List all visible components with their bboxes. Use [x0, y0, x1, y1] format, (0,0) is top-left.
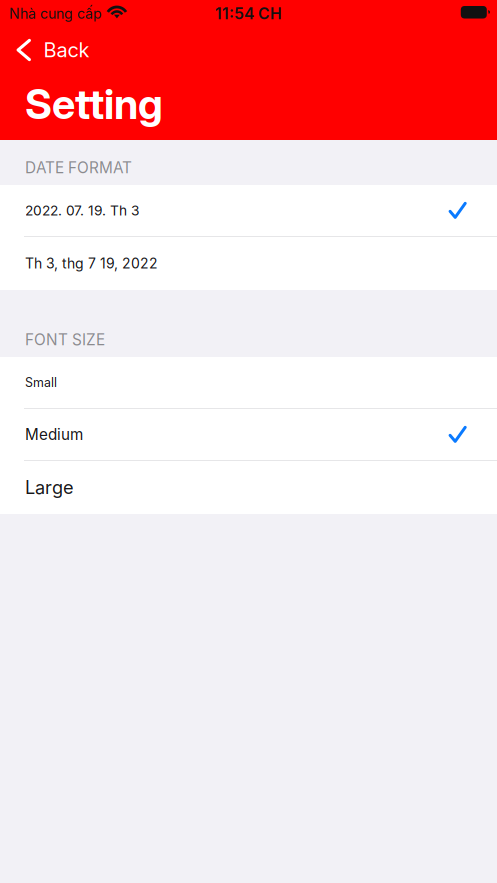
staticText: Medium [25, 425, 83, 444]
button[interactable]: 2022. 07. 19. Th 3 [0, 185, 497, 237]
staticText: 2022. 07. 19. Th 3 [25, 202, 139, 219]
button[interactable]: Medium [0, 409, 497, 461]
button[interactable]: Large [0, 461, 497, 514]
button[interactable]: Small [0, 357, 497, 409]
staticText: Small [25, 375, 57, 390]
staticText: Nhà cung cấp [9, 5, 102, 22]
staticText: DATE FORMAT [25, 158, 132, 177]
staticText: Th 3, thg 7 19, 2022 [25, 255, 158, 272]
button[interactable]: Th 3, thg 7 19, 2022 [0, 237, 497, 290]
staticText: Back [43, 38, 89, 62]
button[interactable]: Back [0, 35, 103, 65]
staticText: Setting [25, 79, 163, 129]
staticText: FONT SIZE [25, 330, 105, 349]
staticText: Large [25, 476, 74, 498]
staticText: 11:54 CH [215, 4, 282, 23]
